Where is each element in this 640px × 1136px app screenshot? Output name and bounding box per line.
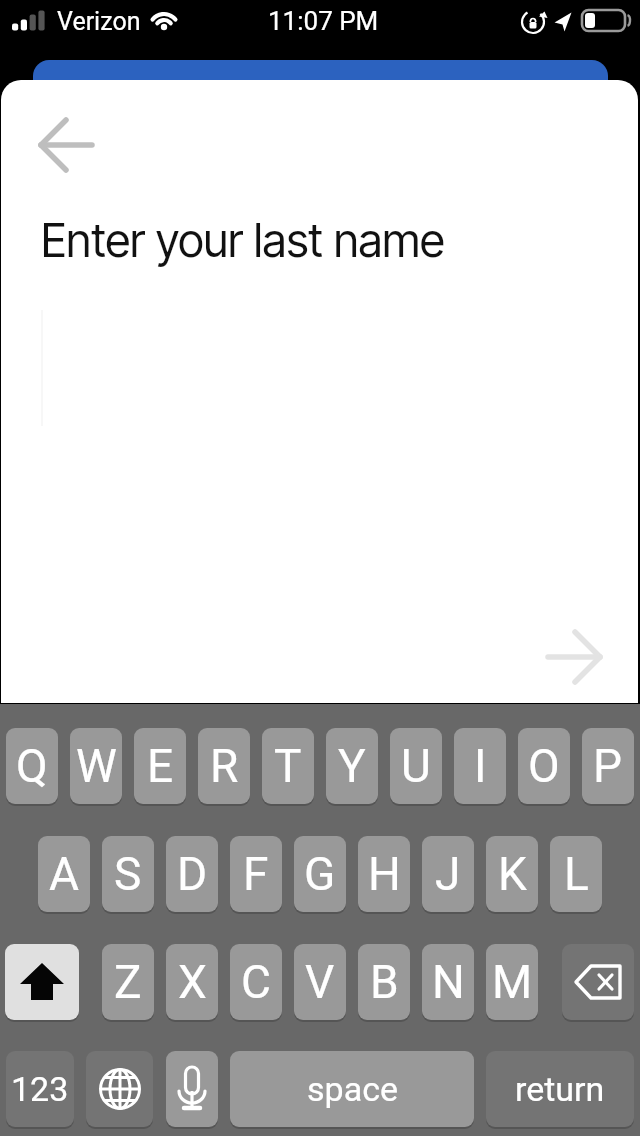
- button[interactable]: C: [230, 944, 282, 1020]
- staticText: U: [401, 739, 431, 793]
- button[interactable]: O: [518, 728, 570, 804]
- staticText: J: [435, 847, 461, 901]
- button[interactable]: M: [486, 944, 538, 1020]
- staticText: Q: [16, 739, 48, 793]
- button[interactable]: space: [230, 1051, 474, 1127]
- button[interactable]: E: [134, 728, 186, 804]
- button[interactable]: A: [38, 836, 90, 912]
- button[interactable]: W: [70, 728, 122, 804]
- staticText: Y: [338, 739, 366, 793]
- button[interactable]: 123: [6, 1051, 74, 1127]
- button[interactable]: F: [230, 836, 282, 912]
- button[interactable]: D: [166, 836, 218, 912]
- staticText: I: [474, 739, 487, 793]
- staticText: N: [432, 955, 465, 1009]
- button[interactable]: K: [486, 836, 538, 912]
- button[interactable]: Back: [26, 106, 108, 186]
- staticText: F: [243, 847, 269, 901]
- staticText: space: [307, 1069, 398, 1109]
- staticText: 11:07 PM: [268, 6, 379, 36]
- staticText: A: [49, 847, 80, 901]
- button[interactable]: [5, 944, 79, 1020]
- button[interactable]: S: [102, 836, 154, 912]
- button[interactable]: Next: [534, 618, 616, 698]
- button[interactable]: J: [422, 836, 474, 912]
- button[interactable]: [166, 1051, 218, 1127]
- button[interactable]: T: [262, 728, 314, 804]
- staticText: H: [368, 847, 401, 901]
- staticText: B: [370, 955, 399, 1009]
- staticText: R: [210, 739, 239, 793]
- staticText: C: [241, 955, 271, 1009]
- staticText: 123: [11, 1069, 69, 1109]
- button[interactable]: Y: [326, 728, 378, 804]
- staticText: L: [564, 847, 589, 901]
- button[interactable]: [562, 944, 634, 1020]
- staticText: return: [515, 1069, 605, 1109]
- staticText: X: [178, 955, 207, 1009]
- button[interactable]: X: [166, 944, 218, 1020]
- button[interactable]: B: [358, 944, 410, 1020]
- staticText: P: [593, 739, 623, 793]
- button[interactable]: R: [198, 728, 250, 804]
- button[interactable]: L: [550, 836, 602, 912]
- button[interactable]: U: [390, 728, 442, 804]
- staticText: Z: [114, 955, 142, 1009]
- button[interactable]: Q: [6, 728, 58, 804]
- button[interactable]: [86, 1051, 153, 1127]
- staticText: V: [305, 955, 335, 1009]
- staticText: S: [114, 847, 142, 901]
- staticText: Enter your last name: [41, 212, 445, 268]
- staticText: T: [274, 739, 302, 793]
- button[interactable]: G: [294, 836, 346, 912]
- button[interactable]: P: [582, 728, 634, 804]
- staticText: O: [528, 739, 560, 793]
- button[interactable]: V: [294, 944, 346, 1020]
- button[interactable]: return: [486, 1051, 634, 1127]
- button[interactable]: N: [422, 944, 474, 1020]
- staticText: G: [304, 847, 336, 901]
- staticText: K: [498, 847, 527, 901]
- staticText: M: [492, 955, 533, 1009]
- staticText: W: [76, 739, 117, 793]
- button[interactable]: Z: [102, 944, 154, 1020]
- button[interactable]: H: [358, 836, 410, 912]
- staticText: D: [177, 847, 208, 901]
- staticText: E: [147, 739, 174, 793]
- staticText: Verizon: [57, 7, 141, 36]
- button[interactable]: I: [454, 728, 506, 804]
